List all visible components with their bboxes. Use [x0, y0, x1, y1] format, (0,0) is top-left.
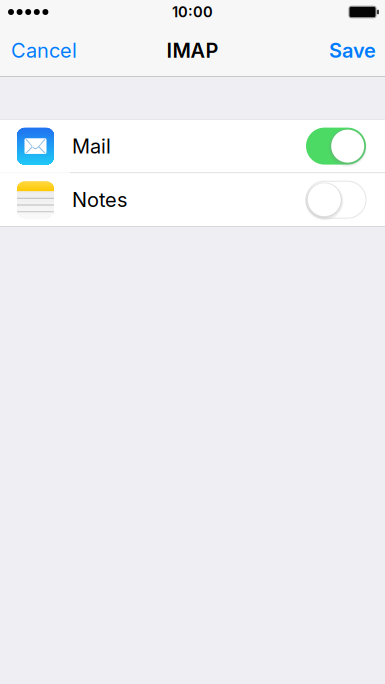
staticText: Notes [72, 188, 127, 212]
button[interactable]: Notes [0, 173, 385, 226]
button[interactable]: Mail [0, 120, 385, 173]
button[interactable]: Save [318, 24, 385, 77]
button[interactable]: Mail, on [306, 128, 366, 165]
button[interactable]: Cancel [0, 24, 88, 77]
staticText: 10:00 [172, 3, 213, 21]
staticText: IMAP [166, 38, 218, 63]
staticText: Save [329, 38, 376, 63]
button[interactable]: Notes, off [306, 181, 366, 218]
staticText: Mail [72, 134, 111, 158]
staticText: Cancel [11, 38, 77, 63]
